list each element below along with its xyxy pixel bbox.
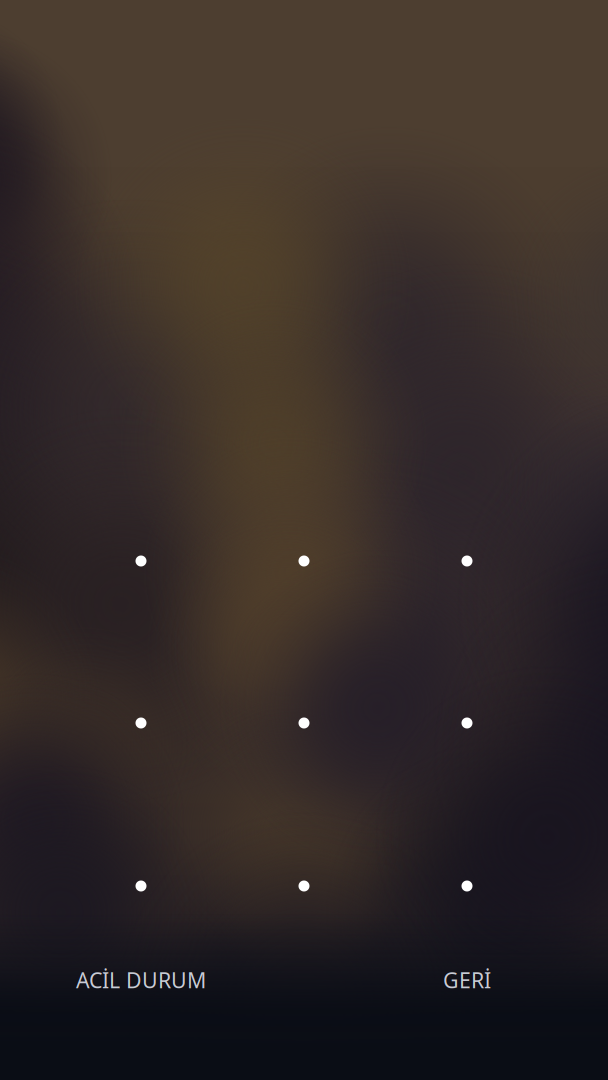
button[interactable]: Keypad 6 [426, 682, 508, 764]
button[interactable]: Keypad 1 [100, 520, 182, 602]
button[interactable]: GERİ [397, 955, 537, 1005]
button[interactable]: Keypad 4 [100, 682, 182, 764]
button[interactable]: Keypad 2 [263, 520, 345, 602]
staticText: ACİL DURUM [76, 966, 206, 994]
button[interactable]: Keypad 5 [263, 682, 345, 764]
button[interactable]: ACİL DURUM [41, 955, 241, 1005]
button[interactable]: Keypad 8 [263, 845, 345, 927]
button[interactable]: Keypad 3 [426, 520, 508, 602]
button[interactable]: Keypad 7 [100, 845, 182, 927]
staticText: GERİ [443, 966, 491, 994]
button[interactable]: Keypad 9 [426, 845, 508, 927]
